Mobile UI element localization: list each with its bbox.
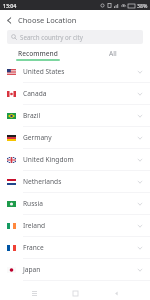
button[interactable]: Netherlands [0, 171, 150, 193]
button[interactable]: France [0, 237, 150, 259]
button[interactable]: Brazil [0, 105, 150, 127]
staticText: Recommend [18, 49, 58, 58]
button[interactable]: Japan [0, 259, 150, 281]
staticText: United States [23, 67, 65, 76]
button[interactable]: United States [0, 61, 150, 83]
button[interactable]: All [75, 47, 150, 59]
staticText: Netherlands [23, 177, 62, 186]
button[interactable]: Germany [0, 127, 150, 149]
button[interactable]: Back [109, 286, 123, 300]
button[interactable]: Canada [0, 83, 150, 105]
button[interactable]: Russia [0, 193, 150, 215]
button[interactable]: Search country or city [7, 30, 143, 44]
staticText: France [23, 243, 44, 252]
button[interactable]: United Kingdom [0, 149, 150, 171]
staticText: Choose Location [18, 15, 77, 25]
staticText: Brazil [23, 111, 41, 120]
staticText: All [109, 49, 117, 58]
button[interactable]: Home [68, 286, 82, 300]
staticText: 13:04 [3, 2, 17, 9]
staticText: Russia [23, 199, 43, 208]
staticText: 38% [137, 2, 148, 9]
staticText: Search country or city [20, 33, 83, 41]
button[interactable]: Ireland [0, 215, 150, 237]
staticText: Japan [23, 265, 41, 274]
staticText: Ireland [23, 221, 46, 230]
staticText: United Kingdom [23, 155, 74, 164]
button[interactable]: Recent apps [27, 286, 41, 300]
staticText: Canada [23, 89, 47, 98]
button[interactable]: Back [0, 11, 18, 29]
staticText: Germany [23, 133, 52, 142]
button[interactable]: Recommend [0, 47, 75, 59]
